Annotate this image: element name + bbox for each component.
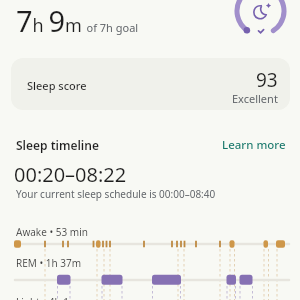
staticText: 00:20–08:22 <box>14 161 127 188</box>
button[interactable]: Sleep score <box>11 58 290 110</box>
staticText: Your current sleep schedule is 00:00–08:… <box>16 187 216 201</box>
staticText: Excellent <box>232 91 278 106</box>
staticText: 93 <box>256 67 278 93</box>
staticText: Sleep score <box>27 78 87 93</box>
staticText: Light • 4h 1m <box>16 295 79 300</box>
staticText: REM • 1h 37m <box>16 256 82 270</box>
staticText: 7h 9m of 7h goal <box>16 1 139 40</box>
staticText: Sleep timeline <box>16 137 99 153</box>
staticText: Awake • 53 min <box>16 225 88 239</box>
button[interactable]: Learn more <box>216 137 286 153</box>
staticText: Learn more <box>222 137 286 153</box>
